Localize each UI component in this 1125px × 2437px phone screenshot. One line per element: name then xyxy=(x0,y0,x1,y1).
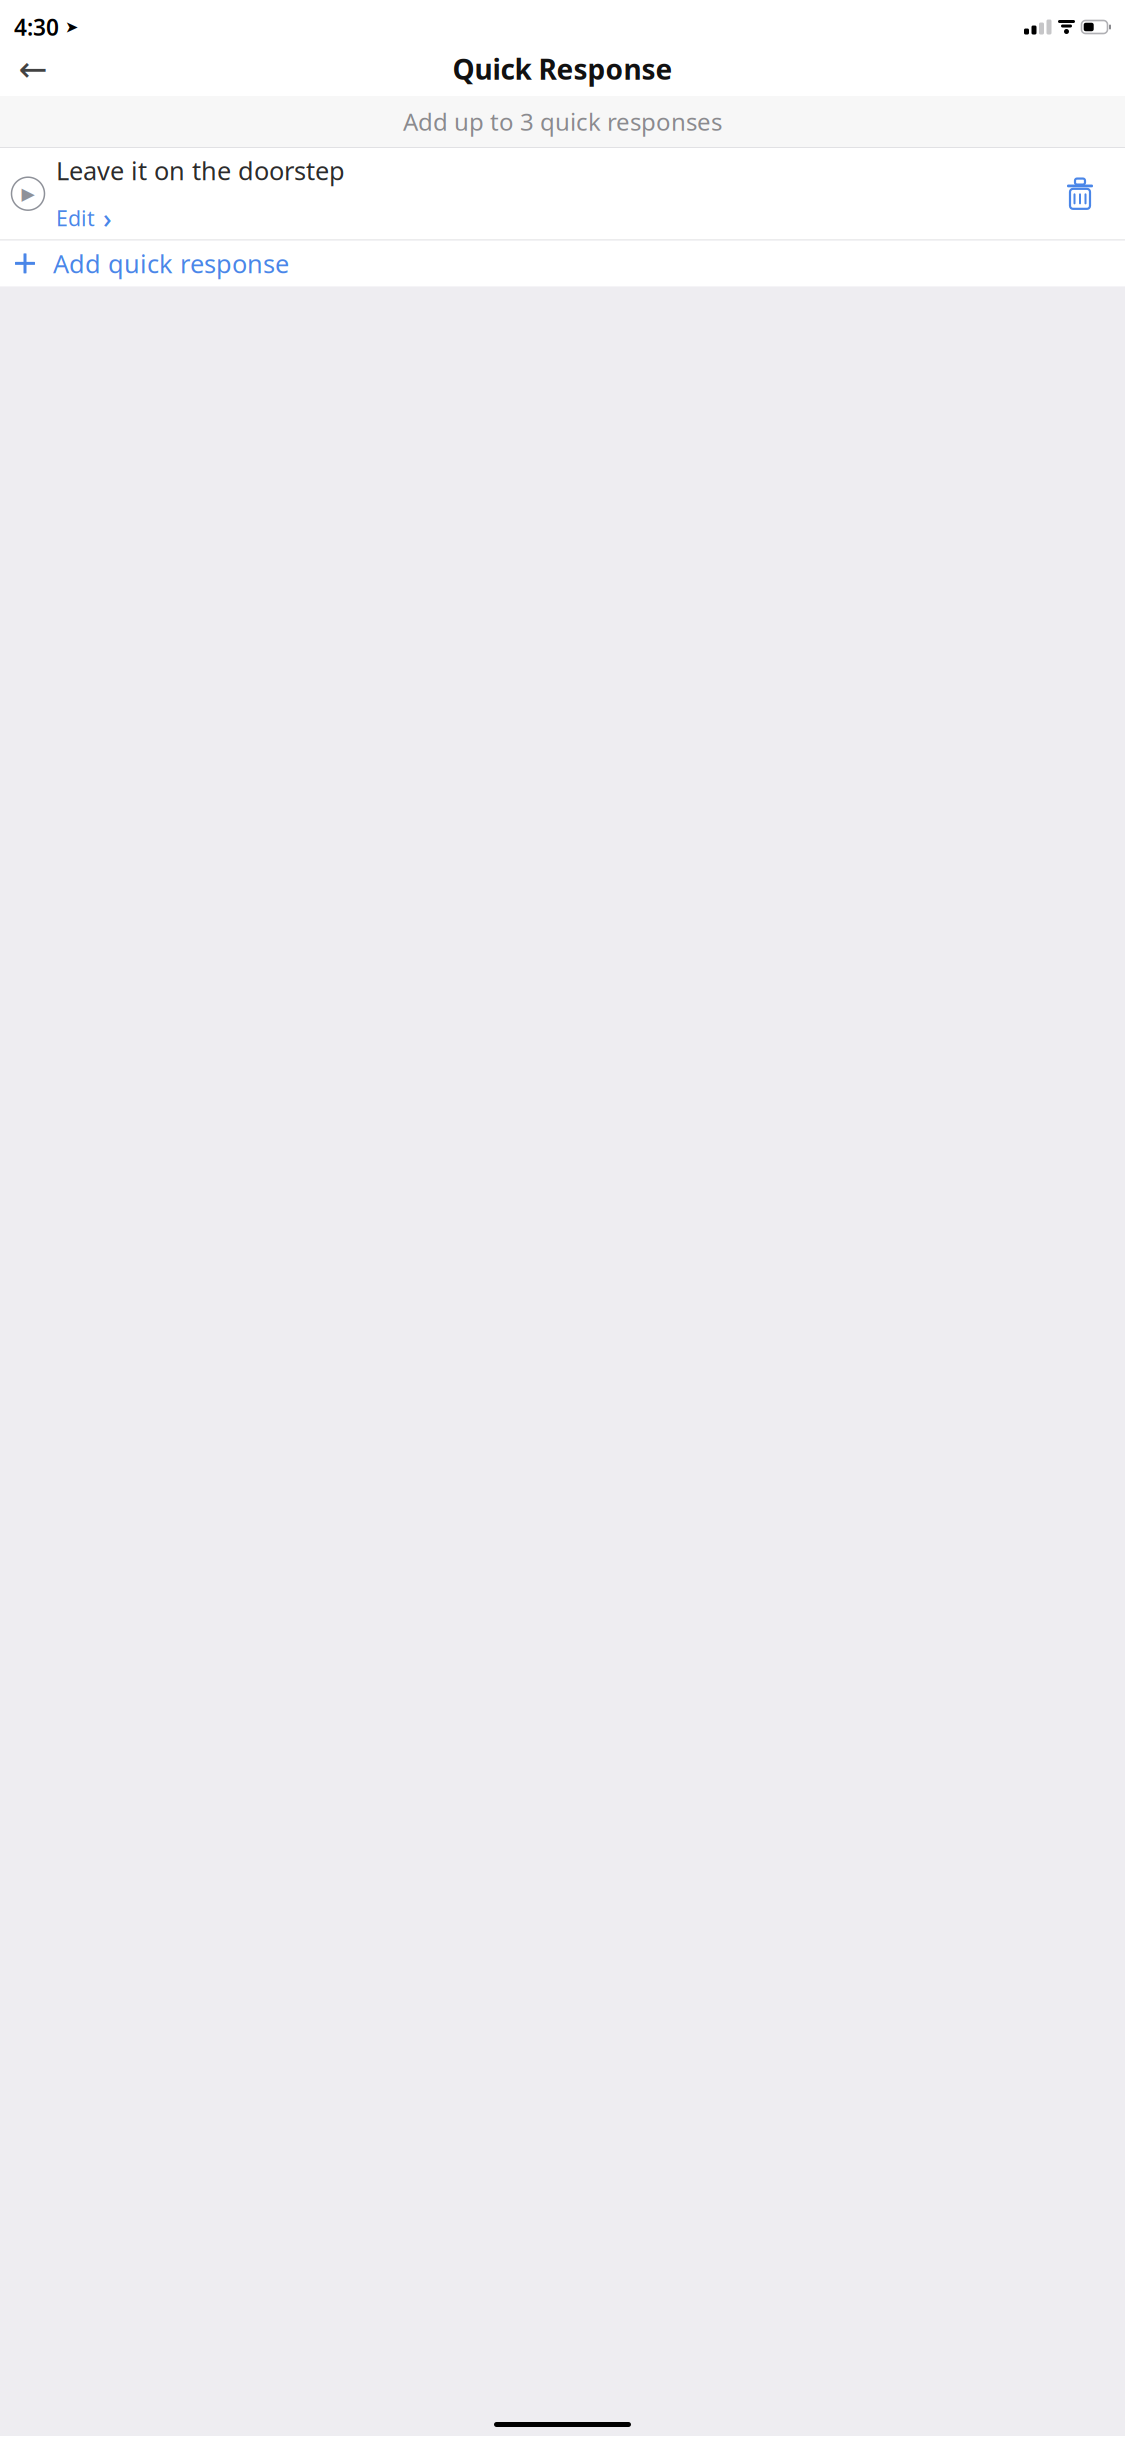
staticText: Add quick response xyxy=(53,247,289,280)
button[interactable]: Edit xyxy=(56,200,112,236)
staticText: ▶ xyxy=(21,184,34,204)
button[interactable]: Play response xyxy=(0,148,56,240)
staticText: 4:30 xyxy=(14,12,59,42)
staticText: Leave it on the doorstep xyxy=(56,154,345,187)
staticText: ← xyxy=(18,49,47,89)
staticText: Quick Response xyxy=(452,50,672,88)
staticText: Edit xyxy=(56,204,95,232)
staticText: Add up to 3 quick responses xyxy=(403,106,722,137)
staticText: ➤ xyxy=(65,18,78,36)
button[interactable]: Delete response xyxy=(1051,148,1109,240)
staticText: › xyxy=(103,200,112,236)
button[interactable]: Add quick response xyxy=(0,240,1125,286)
button[interactable]: Back xyxy=(6,45,60,93)
